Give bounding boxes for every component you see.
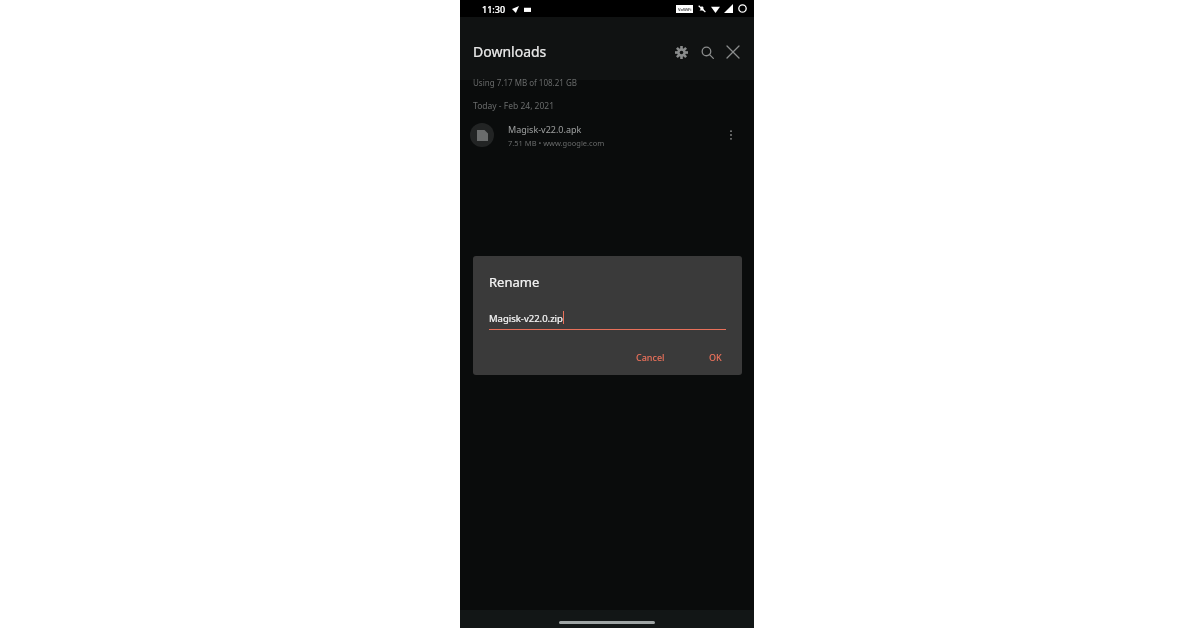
staticText: Today - Feb 24, 2021 (473, 100, 555, 112)
button[interactable]: Magisk-v22.0.apk (460, 112, 754, 158)
staticText: Using 7.17 MB of 108.21 GB (473, 77, 577, 88)
staticText: Cancel (636, 351, 665, 363)
staticText: Rename (489, 273, 540, 291)
staticText: Downloads (473, 42, 547, 61)
button[interactable]: More options (718, 122, 744, 148)
staticText: VoWiFi (678, 7, 692, 12)
staticText: Magisk-v22.0.apk (508, 123, 582, 135)
staticText: OK (709, 351, 722, 363)
button[interactable]: Close (720, 39, 746, 65)
button[interactable]: OK (699, 345, 732, 369)
staticText: 7.51 MB • www.google.com (508, 138, 605, 148)
staticText: Magisk-v22.0.zip (489, 312, 563, 325)
button[interactable]: Cancel (626, 345, 675, 369)
button[interactable]: Settings (668, 39, 694, 65)
button[interactable]: Search (694, 39, 720, 65)
staticText: 11:30 (482, 3, 506, 15)
